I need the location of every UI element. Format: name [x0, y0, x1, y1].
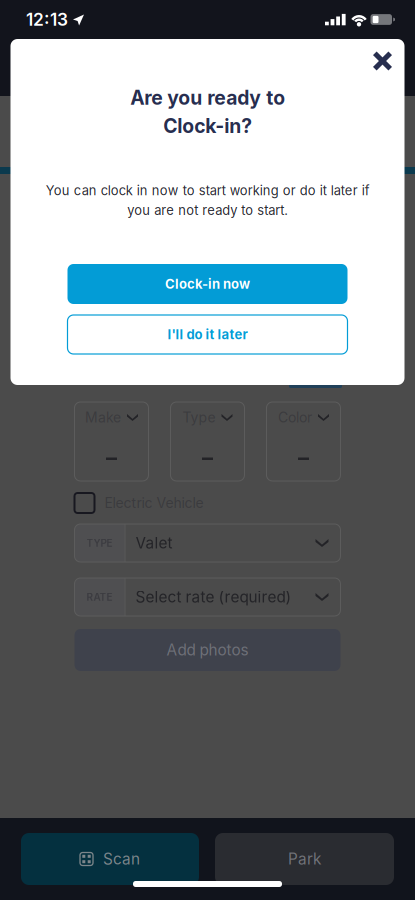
staticText: Make — [85, 409, 121, 426]
staticText: Electric Vehicle — [104, 494, 203, 511]
button[interactable]: Type — [170, 402, 244, 481]
staticText: Select rate (required) — [135, 588, 291, 606]
button[interactable]: RATE — [74, 578, 340, 616]
staticText: TYPE — [86, 537, 112, 549]
staticText: Type — [182, 409, 215, 426]
staticText: Color — [278, 409, 312, 426]
button[interactable]: I'll do it later — [67, 315, 347, 354]
button[interactable]: Clock-in now — [67, 264, 347, 304]
button[interactable]: Add photos — [74, 629, 340, 671]
button[interactable]: Scan — [21, 833, 199, 885]
button[interactable]: Color — [266, 402, 340, 481]
staticText: Valet — [135, 534, 172, 552]
button[interactable]: Park — [215, 833, 394, 885]
staticText: 12:13 — [26, 9, 68, 30]
button[interactable]: Electric Vehicle — [74, 493, 340, 513]
staticText: Scan — [103, 850, 140, 868]
staticText: Clock-in now — [165, 276, 250, 292]
staticText: Are you ready to Clock-in? — [130, 86, 285, 138]
staticText: I'll do it later — [167, 327, 247, 342]
staticText: Add photos — [166, 641, 248, 659]
staticText: You can clock in now to start working or… — [45, 183, 369, 218]
button[interactable]: Close — [360, 39, 404, 83]
button[interactable]: TYPE — [74, 524, 340, 562]
staticText: Park — [288, 850, 321, 868]
button[interactable]: Make — [74, 402, 148, 481]
staticText: RATE — [86, 591, 112, 603]
